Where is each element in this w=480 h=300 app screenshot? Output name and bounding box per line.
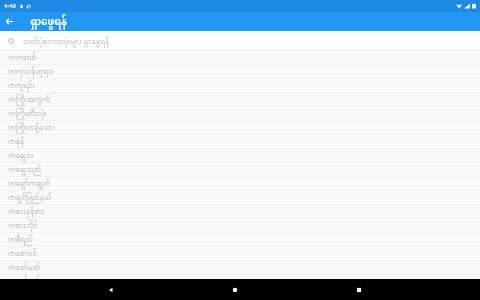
button[interactable]: Home — [222, 279, 248, 300]
staticText: ကချင်ပြည်နယ် — [8, 192, 52, 204]
button[interactable]: ကကတစ် — [0, 51, 480, 65]
button[interactable]: ကကုသန်ဘုရား — [0, 65, 480, 79]
staticText: ကကြိုးတီးလုံး — [8, 108, 47, 120]
staticText: ကချေသည် — [8, 164, 42, 176]
button[interactable]: ကစော်မတ် — [0, 261, 480, 275]
staticText: ကကြိုးတန့်သော — [8, 122, 55, 134]
staticText: သတ်ပုံစကားလုံးများ ရှာဖွေရန် — [23, 35, 110, 47]
staticText: ကစော်ရည် — [8, 275, 41, 279]
button[interactable]: ကစားဘိုင် — [0, 219, 480, 233]
staticText: ကစားခုန်စား — [8, 206, 45, 218]
button[interactable]: သတ်ပုံစကားလုံးများ ရှာဖွေရန် — [0, 31, 480, 51]
button[interactable]: ကကြိုးအကွက် — [0, 93, 480, 107]
button[interactable]: ကချင်ပြည်နယ် — [0, 191, 480, 205]
button[interactable]: ကချေသ — [0, 149, 480, 163]
button[interactable]: ကကြိုးတန့်သော — [0, 121, 480, 135]
button[interactable]: ကကြိုးတီးလုံး — [0, 107, 480, 121]
staticText: ကကူရင်း — [8, 80, 35, 92]
staticText: ကစော်မတ် — [8, 262, 41, 274]
staticText: 4:48 — [4, 2, 16, 10]
staticText: ကစီရည် — [8, 234, 33, 246]
staticText: ကစောပင် — [8, 248, 37, 260]
button[interactable]: Recent apps — [346, 279, 372, 300]
button[interactable]: ကခုန် — [0, 135, 480, 149]
button[interactable]: ကစားခုန်စား — [0, 205, 480, 219]
staticText: ကကုသန်ဘုရား — [8, 66, 54, 78]
staticText: ကခုန် — [8, 136, 25, 148]
staticText: ကချော်ကချွတ် — [8, 178, 51, 190]
staticText: ကစားဘိုင် — [8, 220, 38, 232]
button[interactable]: ကစီရည် — [0, 233, 480, 247]
button[interactable]: ကချေသည် — [0, 163, 480, 177]
button[interactable]: Back — [0, 12, 19, 31]
staticText: ရှာဖွေရန် — [30, 12, 67, 31]
button[interactable]: Back — [98, 279, 124, 300]
button[interactable]: ကကူရင်း — [0, 79, 480, 93]
staticText: ကကတစ် — [8, 52, 36, 64]
staticText: ကချေသ — [8, 150, 34, 162]
button[interactable]: ကချော်ကချွတ် — [0, 177, 480, 191]
button[interactable]: ကစောပင် — [0, 247, 480, 261]
staticText: ကကြိုးအကွက် — [8, 94, 51, 106]
